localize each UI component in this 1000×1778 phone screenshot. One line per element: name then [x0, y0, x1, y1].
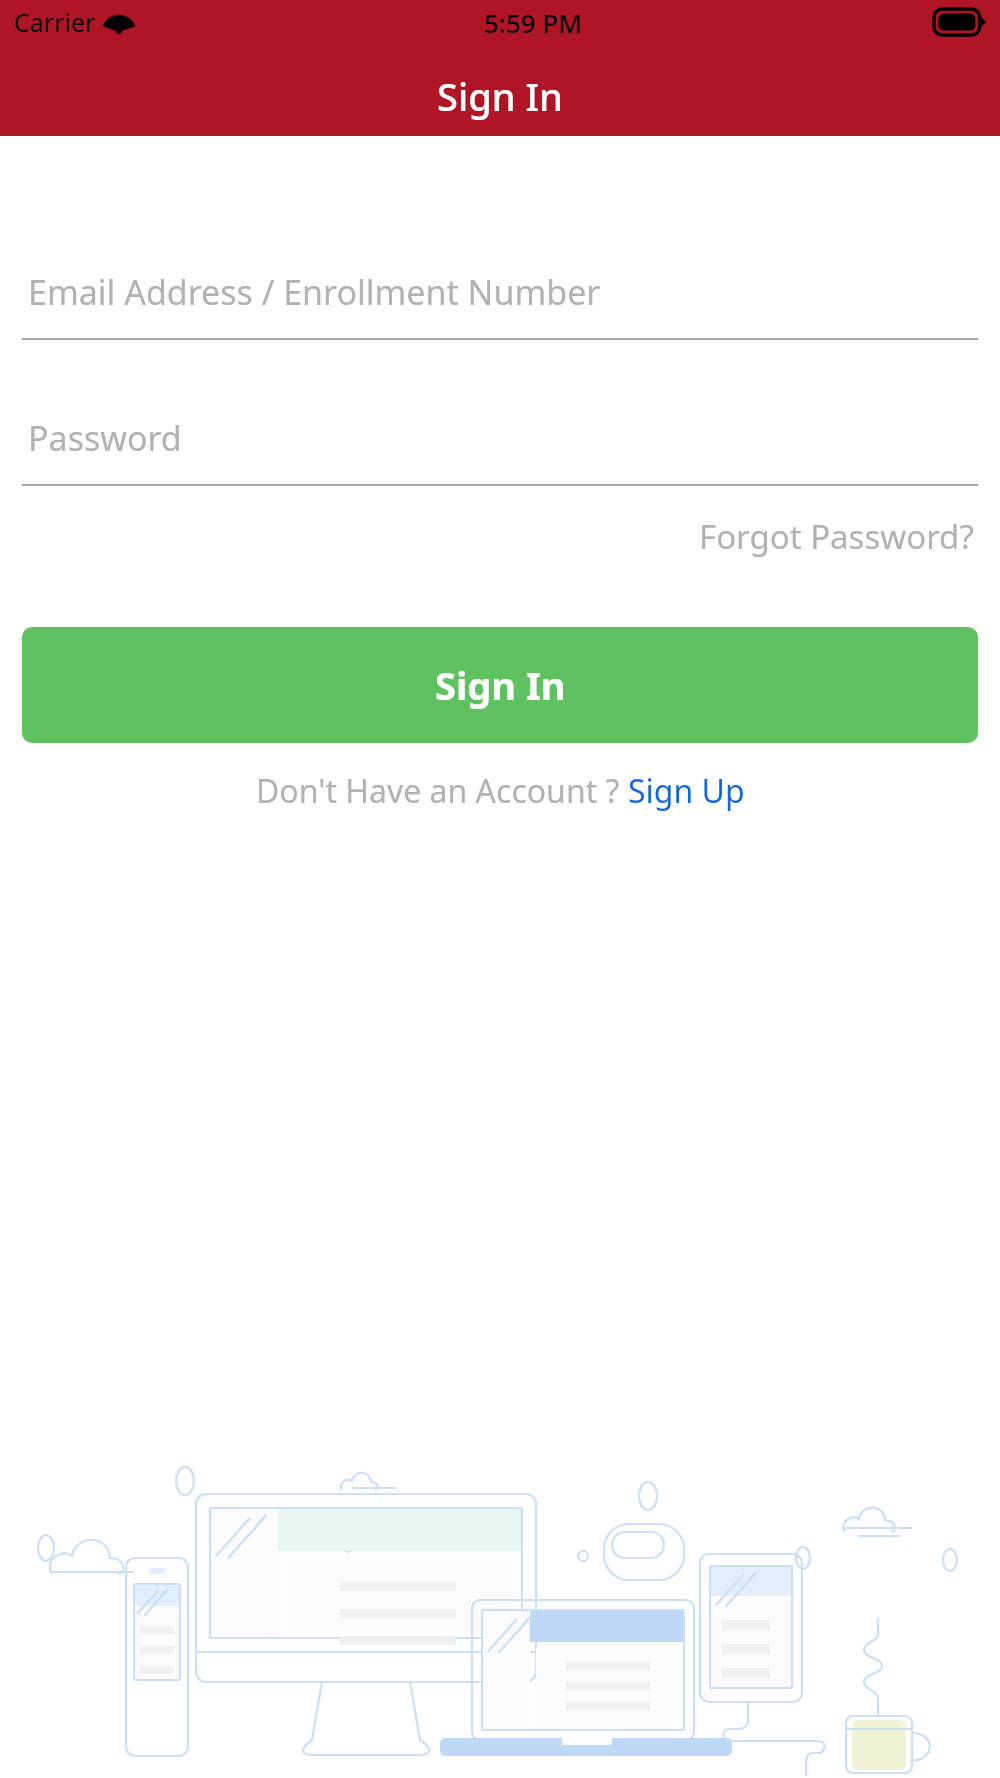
staticText: Carrier	[14, 5, 96, 39]
staticText: Password	[28, 415, 182, 461]
staticText: Forgot Password?	[699, 514, 974, 559]
button[interactable]: Email Address / Enrollment Number	[22, 246, 978, 338]
button[interactable]: Sign Up	[628, 769, 745, 813]
staticText: Sign Up	[628, 769, 745, 813]
staticText: 5:59 PM	[484, 5, 583, 40]
staticText: Email Address / Enrollment Number	[28, 269, 601, 315]
button[interactable]: Password	[22, 392, 978, 484]
staticText: Sign In	[435, 659, 566, 711]
staticText: Don't Have an Account ?	[256, 769, 628, 813]
button[interactable]: Sign In	[22, 627, 978, 743]
other: Devices illustration	[0, 1448, 1000, 1778]
button[interactable]: Forgot Password?	[695, 508, 978, 565]
staticText: Sign In	[437, 70, 563, 122]
